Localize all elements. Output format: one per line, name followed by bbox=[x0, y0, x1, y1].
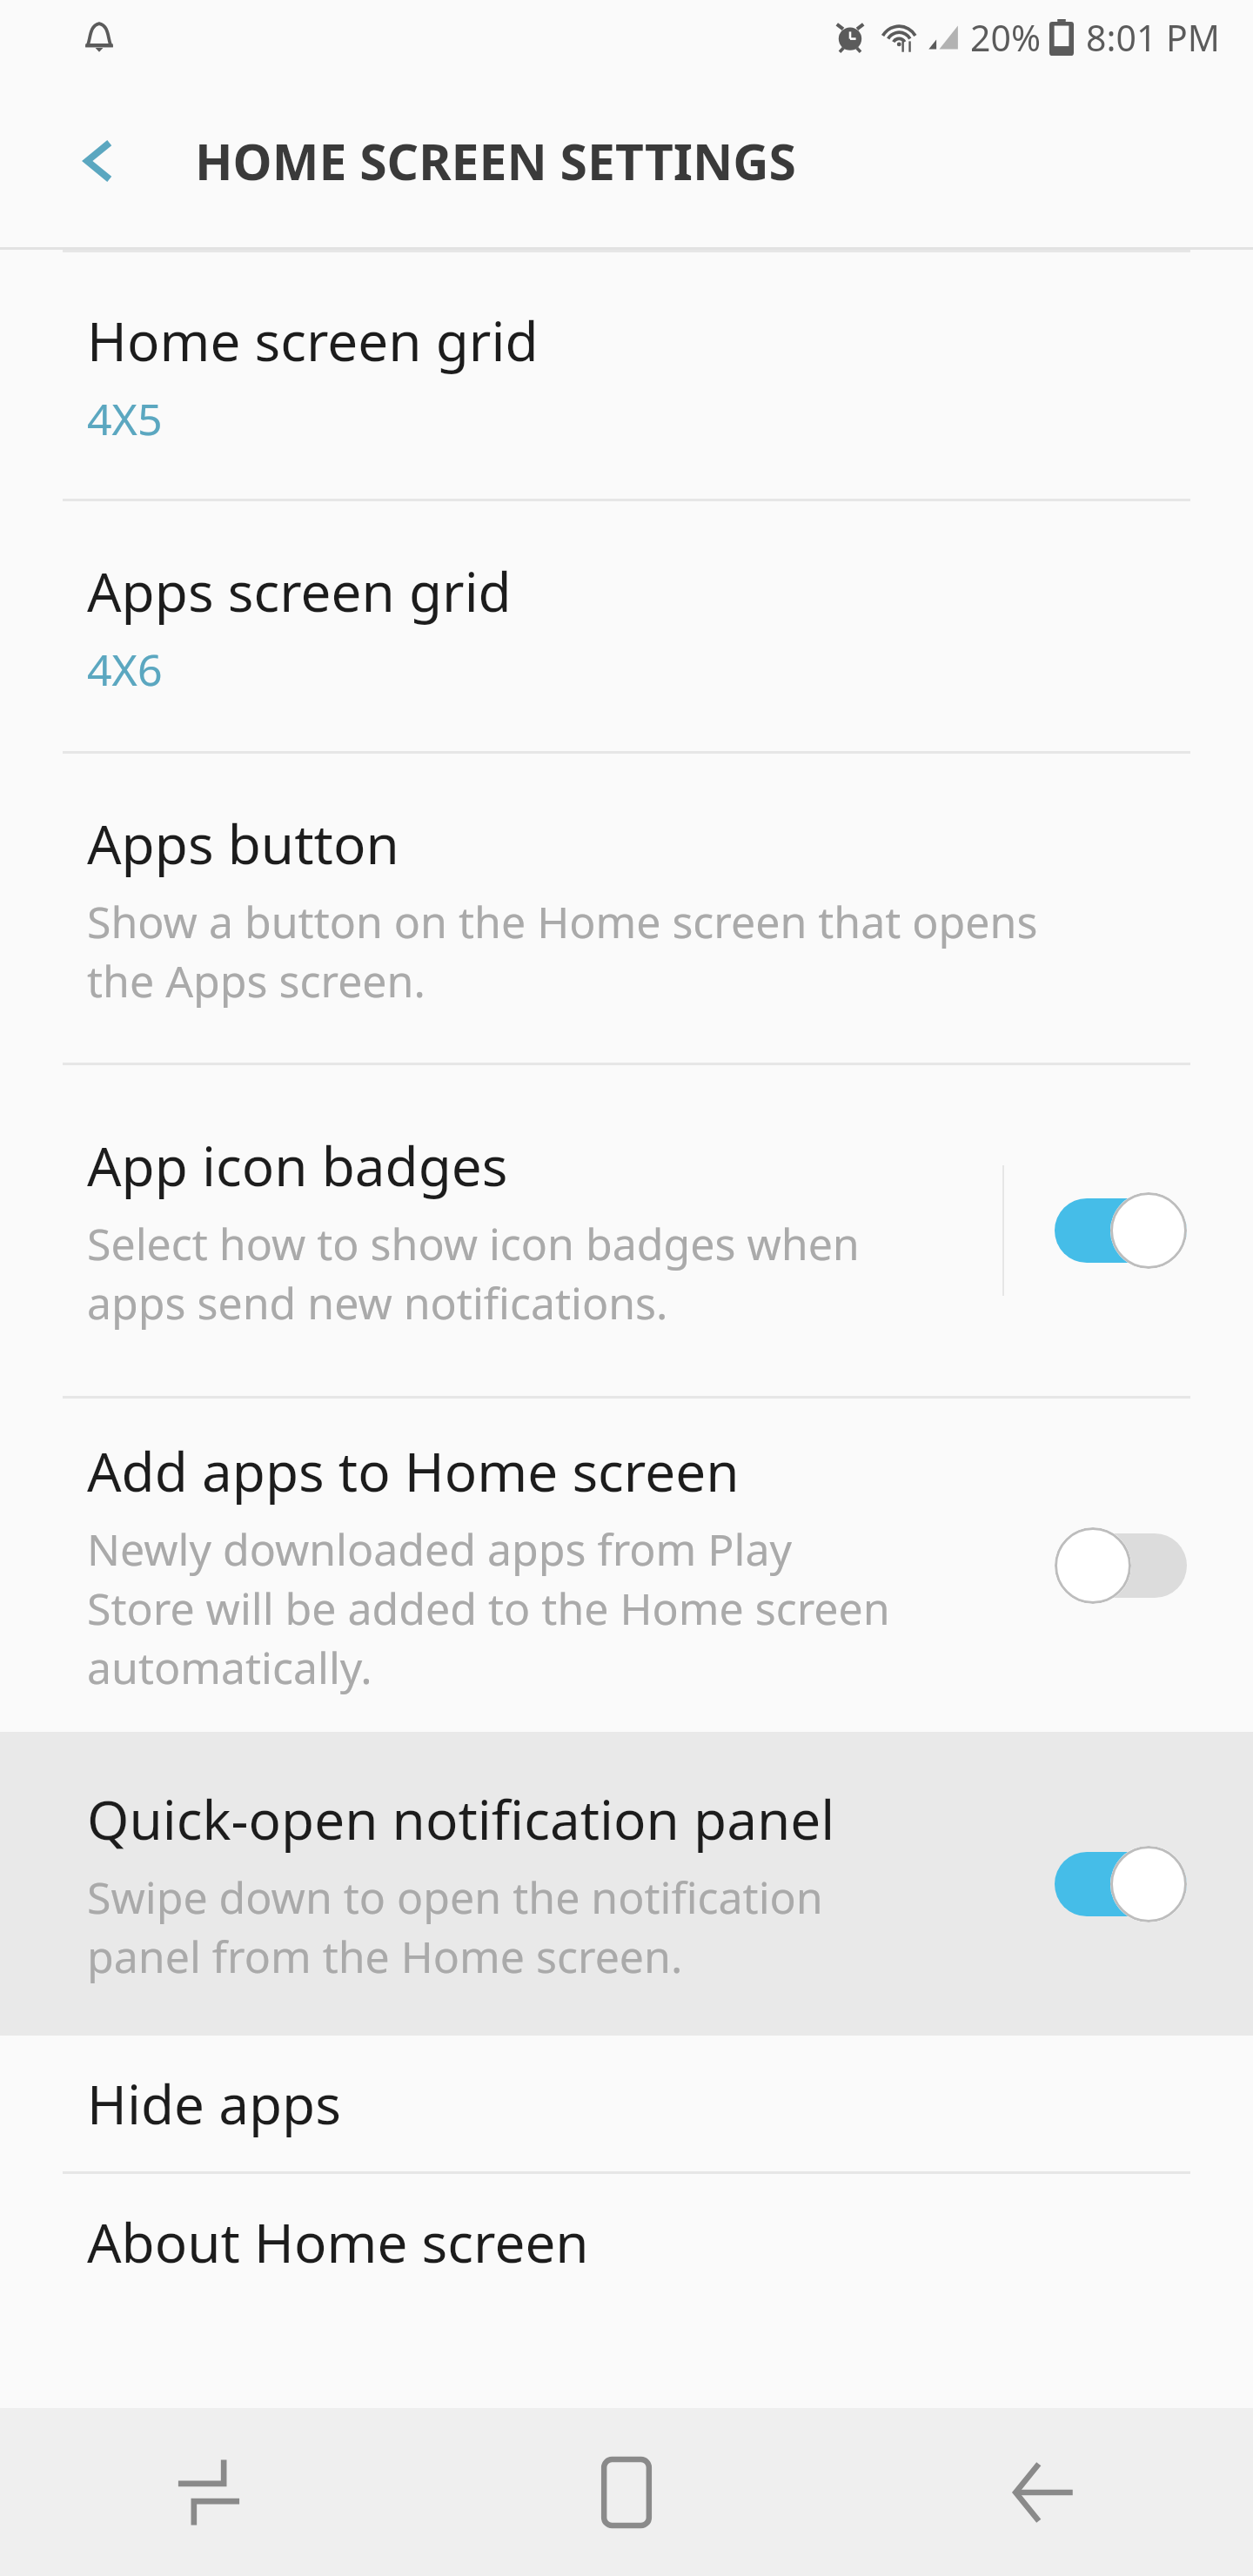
button[interactable]: Add apps to Home screen bbox=[0, 1399, 1253, 1732]
staticText: Apps screen grid bbox=[87, 554, 512, 627]
staticText: 20% bbox=[970, 13, 1041, 62]
staticText: HOME SCREEN SETTINGS bbox=[195, 127, 797, 195]
button[interactable]: App icon badges bbox=[0, 1065, 1253, 1396]
staticText: Home screen grid bbox=[87, 304, 539, 377]
staticText: 8:01 PM bbox=[1086, 13, 1220, 62]
staticText: About Home screen bbox=[87, 2205, 589, 2278]
button[interactable]: Back bbox=[50, 113, 146, 209]
staticText: Hide apps bbox=[87, 2067, 341, 2140]
staticText: Swipe down to open the notification pane… bbox=[87, 1868, 823, 1986]
button[interactable]: Back bbox=[835, 2408, 1253, 2576]
staticText: 4X6 bbox=[87, 640, 163, 699]
button[interactable]: Add apps to Home screen off bbox=[1042, 1500, 1199, 1631]
staticText: Quick-open notification panel bbox=[87, 1782, 835, 1855]
button[interactable]: Quick-open notification panel bbox=[0, 1732, 1253, 2036]
button[interactable]: Apps screen grid bbox=[0, 501, 1253, 751]
button[interactable]: Home bbox=[418, 2408, 835, 2576]
button[interactable]: Hide apps bbox=[0, 2036, 1253, 2171]
staticText: App icon badges bbox=[87, 1129, 508, 1202]
button[interactable]: Apps button bbox=[0, 754, 1253, 1063]
staticText: Add apps to Home screen bbox=[87, 1434, 740, 1507]
staticText: 4X5 bbox=[87, 389, 163, 448]
button[interactable]: Quick-open notification panel on bbox=[1042, 1819, 1199, 1949]
button[interactable]: Home screen grid bbox=[0, 252, 1253, 499]
button[interactable]: About Home screen bbox=[0, 2174, 1253, 2310]
staticText: Apps button bbox=[87, 807, 399, 880]
button[interactable]: App icon badges on bbox=[1042, 1165, 1199, 1296]
staticText: Newly downloaded apps from Play Store wi… bbox=[87, 1519, 890, 1697]
staticText: Show a button on the Home screen that op… bbox=[87, 892, 1038, 1010]
staticText: Select how to show icon badges when apps… bbox=[87, 1214, 860, 1332]
button[interactable]: Recents bbox=[0, 2408, 418, 2576]
